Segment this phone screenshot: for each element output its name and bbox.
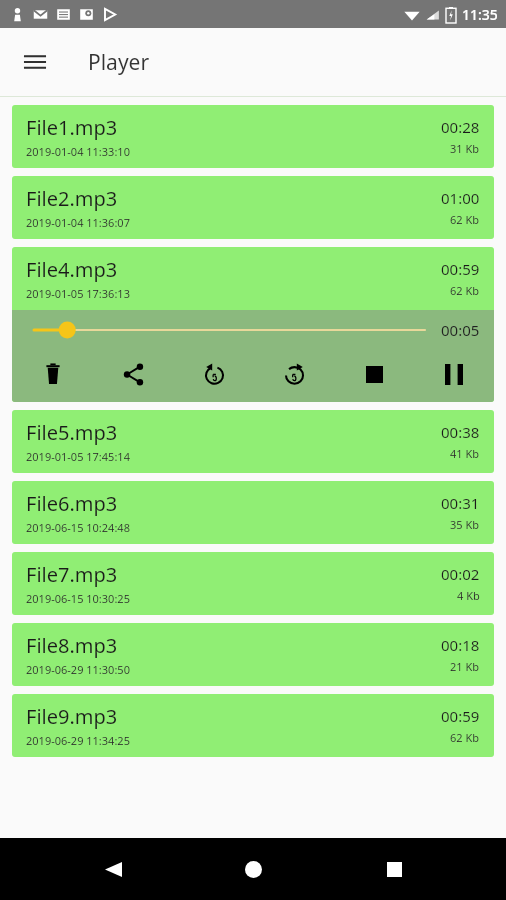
staticText: 21 Kb xyxy=(450,659,480,674)
staticText: 2019-06-15 10:24:48 xyxy=(26,520,130,535)
staticText: Player xyxy=(88,48,150,77)
button[interactable]: File6.mp3 xyxy=(12,481,494,544)
button[interactable]: Pause xyxy=(414,350,494,398)
button[interactable]: Back xyxy=(85,841,141,897)
staticText: 00:59 xyxy=(441,706,480,726)
button[interactable]: Stop xyxy=(334,350,414,398)
staticText: 11:35 xyxy=(462,5,498,24)
staticText: File9.mp3 xyxy=(26,703,118,730)
button[interactable]: File2.mp3 xyxy=(12,176,494,239)
button[interactable]: Open navigation menu xyxy=(12,39,58,85)
staticText: 35 Kb xyxy=(450,517,480,532)
staticText: 62 Kb xyxy=(450,212,480,227)
staticText: 2019-01-05 17:36:13 xyxy=(26,286,130,301)
button[interactable]: File7.mp3 xyxy=(12,552,494,615)
staticText: File7.mp3 xyxy=(26,561,118,588)
staticText: 41 Kb xyxy=(450,446,480,461)
staticText: File8.mp3 xyxy=(26,632,118,659)
staticText: 31 Kb xyxy=(450,141,480,156)
staticText: 62 Kb xyxy=(450,730,480,745)
staticText: 00:59 xyxy=(441,259,480,279)
button[interactable]: Forward 5 seconds xyxy=(254,350,334,398)
staticText: 2019-06-29 11:34:25 xyxy=(26,733,130,748)
button[interactable]: Share xyxy=(93,350,174,398)
staticText: File1.mp3 xyxy=(26,114,118,141)
staticText: 2019-01-05 17:45:14 xyxy=(26,449,130,464)
button[interactable]: File1.mp3 xyxy=(12,105,494,168)
staticText: File6.mp3 xyxy=(26,490,118,517)
staticText: File2.mp3 xyxy=(26,185,118,212)
staticText: File4.mp3 xyxy=(26,256,118,283)
button[interactable]: Delete xyxy=(12,350,93,398)
staticText: 00:28 xyxy=(441,117,480,137)
staticText: 01:00 xyxy=(441,188,480,208)
staticText: 2019-06-15 10:30:25 xyxy=(26,591,130,606)
staticText: 00:05 xyxy=(441,320,480,340)
button[interactable]: Recent apps xyxy=(366,841,422,897)
button[interactable]: Rewind 5 seconds xyxy=(174,350,254,398)
button[interactable]: Seek position xyxy=(34,316,425,344)
staticText: 00:38 xyxy=(441,422,480,442)
button[interactable]: File8.mp3 xyxy=(12,623,494,686)
staticText: 2019-01-04 11:36:07 xyxy=(26,215,130,230)
staticText: 2019-06-29 11:30:50 xyxy=(26,662,130,677)
staticText: 00:02 xyxy=(441,564,480,584)
button[interactable]: File9.mp3 xyxy=(12,694,494,757)
button[interactable]: File4.mp3 xyxy=(12,247,494,402)
staticText: 62 Kb xyxy=(450,283,480,298)
staticText: 2019-01-04 11:33:10 xyxy=(26,144,130,159)
staticText: File5.mp3 xyxy=(26,419,118,446)
button[interactable]: Home xyxy=(225,841,281,897)
staticText: 00:31 xyxy=(441,493,480,513)
staticText: 00:18 xyxy=(441,635,480,655)
button[interactable]: File5.mp3 xyxy=(12,410,494,473)
staticText: 4 Kb xyxy=(457,588,480,603)
